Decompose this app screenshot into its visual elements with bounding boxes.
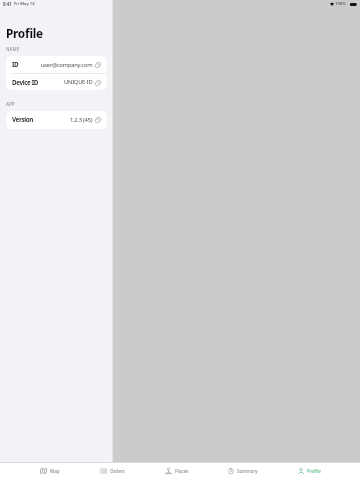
button[interactable]: Copy Device ID xyxy=(94,79,101,86)
staticText: Profile xyxy=(6,25,43,41)
button[interactable]: Orders xyxy=(90,462,134,480)
button[interactable]: ID xyxy=(6,56,107,73)
button[interactable]: Map xyxy=(28,462,72,480)
staticText: Summary xyxy=(237,468,258,474)
button[interactable]: Copy ID xyxy=(94,61,101,68)
staticText: 100% xyxy=(335,1,346,7)
staticText: UNIQUE-ID xyxy=(64,78,93,86)
staticText: Device ID xyxy=(12,78,39,87)
staticText: Profile xyxy=(307,468,321,474)
staticText: APP xyxy=(6,101,15,107)
staticText: Orders xyxy=(110,468,125,474)
staticText: Fri May 14 xyxy=(14,1,35,7)
button[interactable]: Places xyxy=(155,462,199,480)
button[interactable]: Copy Version xyxy=(94,116,101,123)
staticText: ID xyxy=(12,60,19,69)
staticText: NAME xyxy=(6,46,20,52)
staticText: 1.2.3 (45) xyxy=(70,116,93,124)
button[interactable]: Profile xyxy=(287,462,331,480)
staticText: 9:41 xyxy=(3,1,12,7)
staticText: user@company.com xyxy=(41,61,93,69)
staticText: Map xyxy=(50,468,60,474)
button[interactable]: Version xyxy=(6,111,107,128)
staticText: Version xyxy=(12,115,33,124)
button[interactable]: Summary xyxy=(221,462,265,480)
button[interactable]: Device ID xyxy=(6,74,107,90)
staticText: Places xyxy=(175,468,189,474)
